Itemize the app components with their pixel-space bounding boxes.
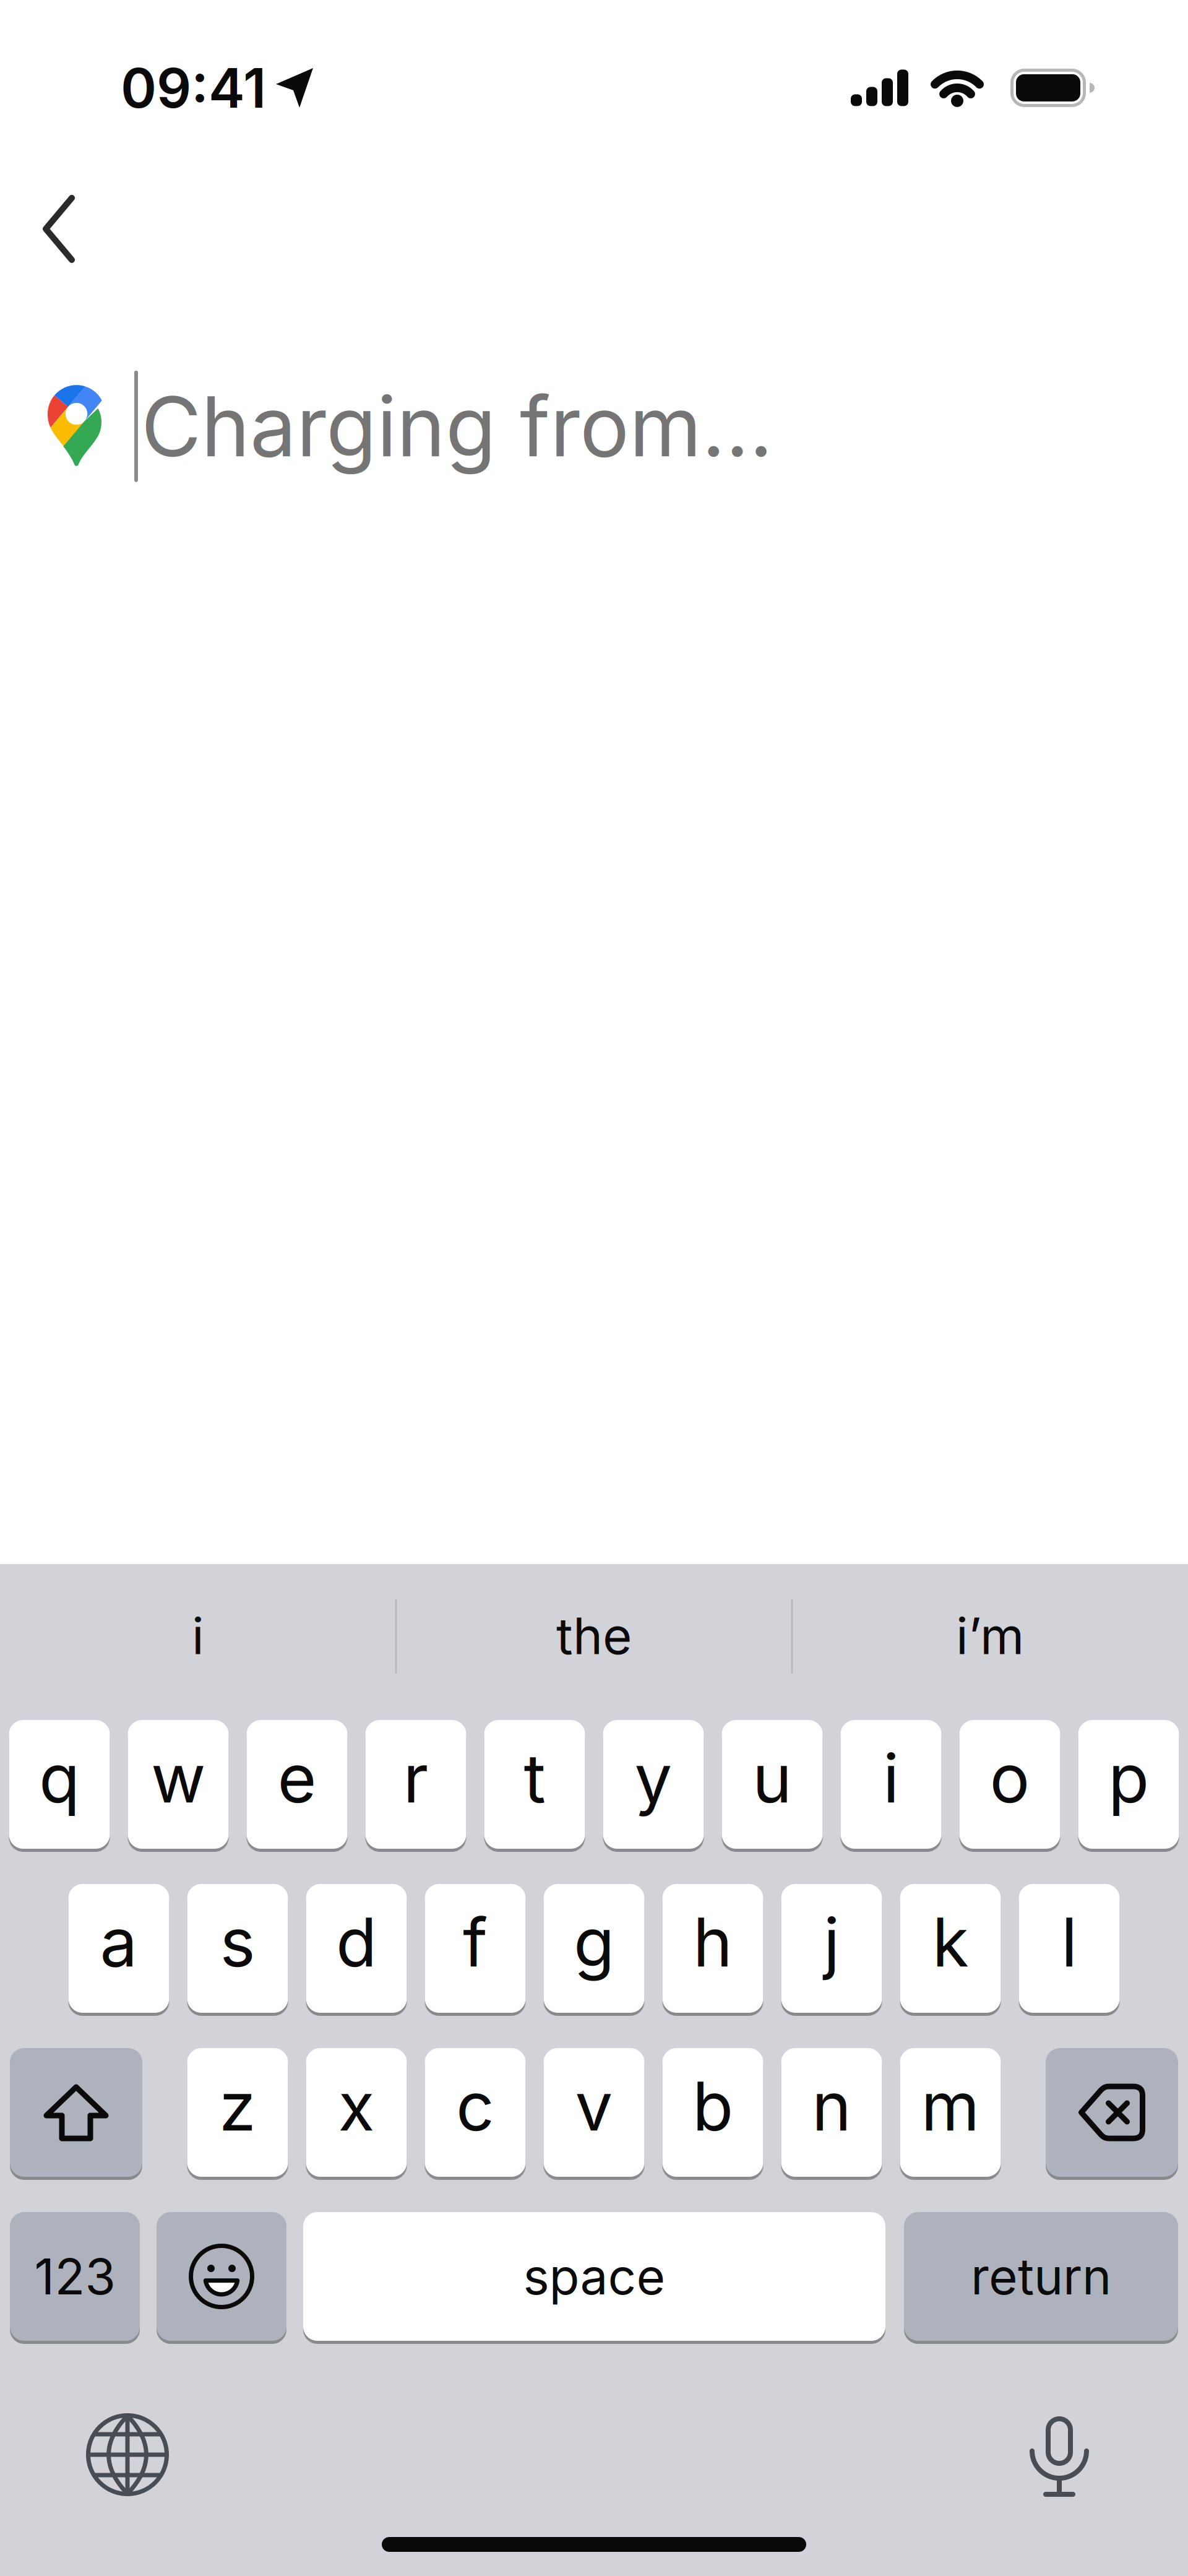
staticText: m — [921, 2067, 980, 2146]
staticText: g — [574, 1903, 614, 1982]
button[interactable]: s — [187, 1884, 288, 2013]
staticText: i’m — [956, 1606, 1024, 1665]
button[interactable]: l — [1019, 1884, 1120, 2013]
staticText: 09:41 — [121, 56, 266, 120]
staticText: n — [812, 2067, 851, 2146]
button[interactable]: x — [306, 2048, 407, 2177]
staticText: a — [100, 1903, 138, 1982]
button[interactable]: u — [722, 1720, 823, 1849]
button[interactable]: i — [841, 1720, 941, 1849]
button[interactable]: r — [365, 1720, 466, 1849]
button[interactable]: space — [303, 2212, 885, 2341]
staticText: the — [556, 1606, 632, 1665]
staticText: space — [523, 2247, 665, 2306]
staticText: r — [403, 1739, 428, 1818]
button[interactable]: 123 — [10, 2212, 140, 2341]
button[interactable]: i — [1, 1564, 395, 1708]
staticText: d — [336, 1903, 377, 1982]
staticText: y — [635, 1739, 672, 1818]
button[interactable]: o — [959, 1720, 1060, 1849]
staticText: c — [456, 2067, 494, 2146]
button[interactable]: j — [781, 1884, 882, 2013]
staticText: x — [338, 2067, 375, 2146]
staticText: o — [990, 1739, 1030, 1818]
staticText: f — [463, 1903, 488, 1982]
staticText: t — [524, 1739, 545, 1818]
staticText: 123 — [34, 2247, 115, 2306]
button[interactable]: Dictation — [1029, 2416, 1090, 2497]
staticText: p — [1108, 1739, 1149, 1818]
button[interactable]: w — [128, 1720, 229, 1849]
button[interactable]: i’m — [793, 1564, 1187, 1708]
staticText: q — [39, 1739, 80, 1818]
button[interactable]: f — [425, 1884, 526, 2013]
button[interactable]: a — [68, 1884, 169, 2013]
button[interactable]: Charging from… — [48, 371, 1188, 482]
staticText: k — [932, 1903, 969, 1982]
button[interactable]: c — [425, 2048, 526, 2177]
button[interactable]: Shift — [10, 2048, 142, 2177]
button[interactable]: z — [187, 2048, 288, 2177]
button[interactable]: Emoji — [157, 2212, 286, 2341]
button[interactable]: n — [781, 2048, 882, 2177]
button[interactable]: p — [1078, 1720, 1179, 1849]
staticText: z — [219, 2067, 256, 2146]
staticText: u — [752, 1739, 792, 1818]
staticText: h — [693, 1903, 733, 1982]
button[interactable]: Delete — [1046, 2048, 1178, 2177]
button[interactable]: b — [662, 2048, 763, 2177]
button[interactable]: g — [544, 1884, 644, 2013]
staticText: Charging from… — [141, 378, 773, 475]
staticText: e — [278, 1739, 316, 1818]
button[interactable]: d — [306, 1884, 407, 2013]
staticText: b — [692, 2067, 733, 2146]
button[interactable]: t — [484, 1720, 585, 1849]
button[interactable]: h — [662, 1884, 763, 2013]
button[interactable]: q — [9, 1720, 110, 1849]
staticText: i — [192, 1606, 204, 1665]
button[interactable]: Next keyboard — [86, 2413, 169, 2496]
staticText: return — [971, 2247, 1111, 2306]
staticText: s — [220, 1903, 255, 1982]
button[interactable]: Back — [42, 195, 75, 263]
staticText: i — [883, 1739, 899, 1818]
button[interactable]: y — [603, 1720, 704, 1849]
staticText: v — [575, 2067, 613, 2146]
button[interactable]: the — [397, 1564, 791, 1708]
button[interactable]: m — [900, 2048, 1001, 2177]
button[interactable]: return — [904, 2212, 1178, 2341]
button[interactable]: k — [900, 1884, 1001, 2013]
staticText: j — [824, 1903, 840, 1982]
button[interactable]: e — [247, 1720, 347, 1849]
staticText: l — [1061, 1903, 1077, 1982]
button[interactable]: v — [544, 2048, 644, 2177]
staticText: w — [151, 1739, 205, 1818]
